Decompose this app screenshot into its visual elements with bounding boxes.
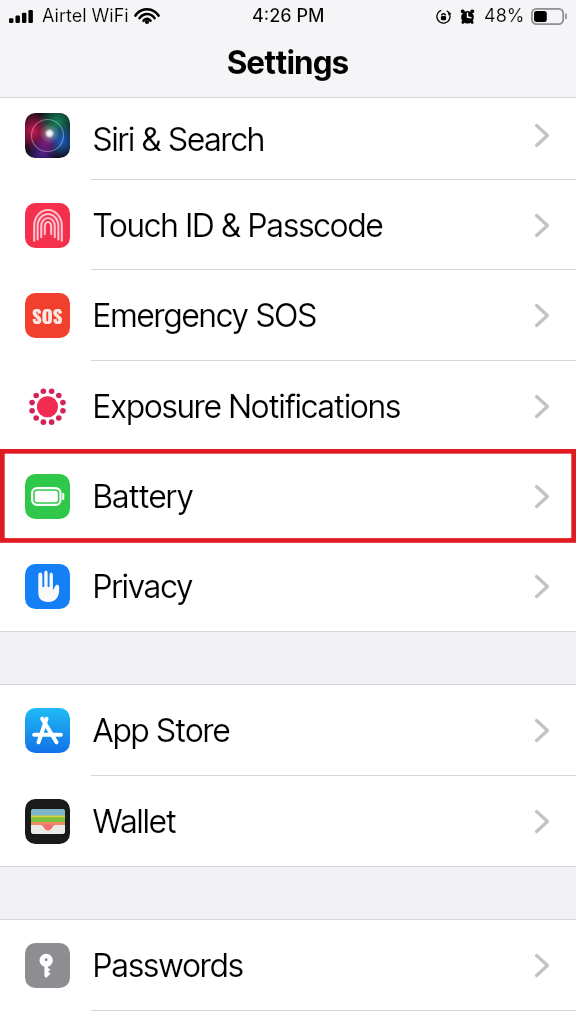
staticText: 4:26 PM: [252, 5, 325, 27]
staticText: Passwords: [93, 946, 244, 985]
button[interactable]: Passwords: [0, 920, 576, 1011]
staticText: Emergency SOS: [93, 296, 317, 335]
other: Alarm set: [460, 9, 475, 24]
staticText: Siri & Search: [93, 120, 265, 159]
button[interactable]: Siri & Search: [0, 98, 576, 180]
staticText: Settings: [0, 43, 576, 81]
button[interactable]: Privacy: [0, 541, 576, 631]
button[interactable]: Exposure Notifications: [0, 361, 576, 451]
staticText: Battery: [93, 477, 194, 516]
staticText: Privacy: [93, 567, 193, 606]
staticText: 48%: [484, 5, 525, 27]
button[interactable]: Battery: [0, 451, 576, 541]
staticText: Touch ID & Passcode: [93, 206, 383, 245]
staticText: SOS: [32, 302, 63, 330]
staticText: Exposure Notifications: [93, 387, 401, 426]
staticText: App Store: [93, 711, 230, 750]
staticText: Airtel WiFi: [42, 5, 129, 27]
button[interactable]: SOS: [0, 270, 576, 361]
button[interactable]: App Store: [0, 685, 576, 776]
button[interactable]: Touch ID & Passcode: [0, 180, 576, 270]
button[interactable]: Wallet: [0, 776, 576, 866]
staticText: Wallet: [93, 802, 177, 841]
other: Rotation lock: [436, 9, 451, 24]
